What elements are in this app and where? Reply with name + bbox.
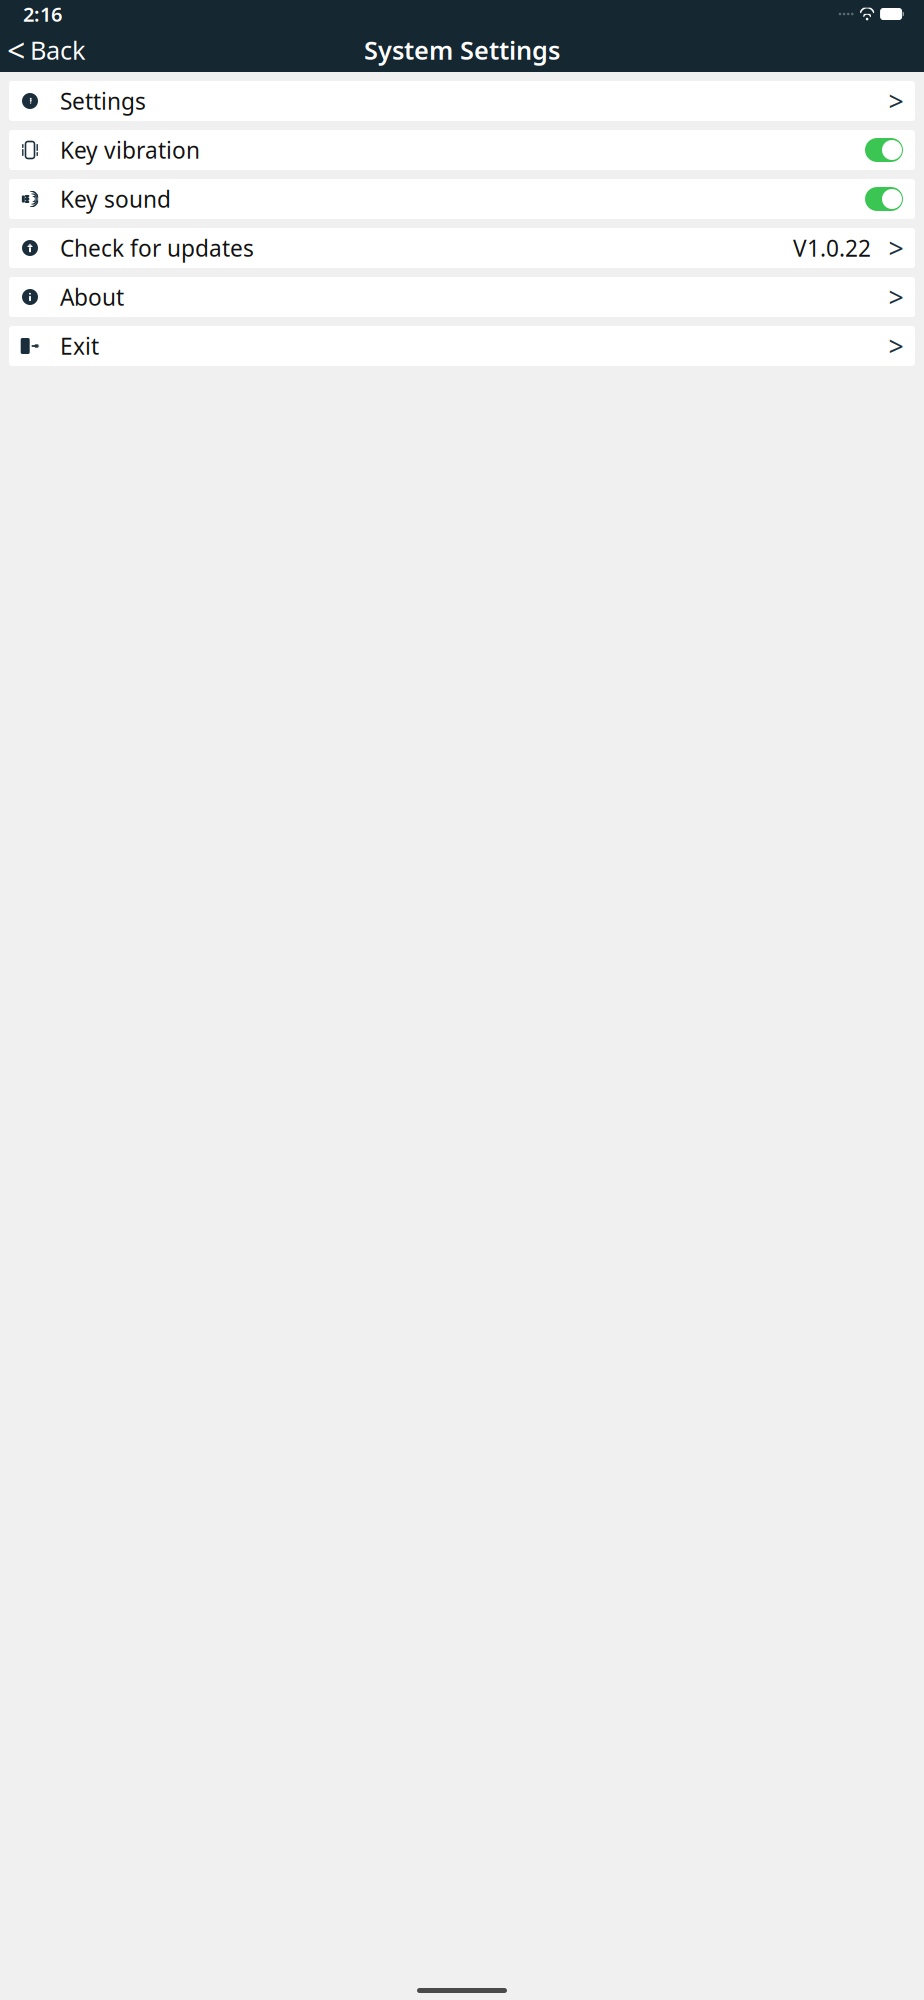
button[interactable]: Exit	[9, 326, 915, 366]
button[interactable]: Key vibration	[9, 130, 915, 170]
staticText: Key sound	[60, 184, 171, 214]
staticText: Key vibration	[60, 135, 200, 165]
button[interactable]: Check for updates	[9, 228, 915, 268]
button[interactable]: <	[0, 25, 86, 75]
staticText: >	[888, 83, 903, 119]
staticText: >	[888, 279, 903, 315]
staticText: Check for updates	[60, 233, 254, 263]
button[interactable]: Key sound	[9, 179, 915, 219]
staticText: System Settings	[364, 33, 560, 67]
staticText: >	[888, 230, 903, 266]
staticText: <	[7, 29, 25, 71]
staticText: >	[888, 328, 903, 364]
button[interactable]: About	[9, 277, 915, 317]
staticText: 2:16	[23, 1, 62, 27]
staticText: Settings	[60, 86, 146, 116]
staticText: Exit	[60, 331, 99, 361]
staticText: V1.0.22	[793, 233, 871, 263]
staticText: Back	[30, 33, 86, 67]
button[interactable]: Settings	[9, 81, 915, 121]
staticText: About	[60, 282, 124, 312]
